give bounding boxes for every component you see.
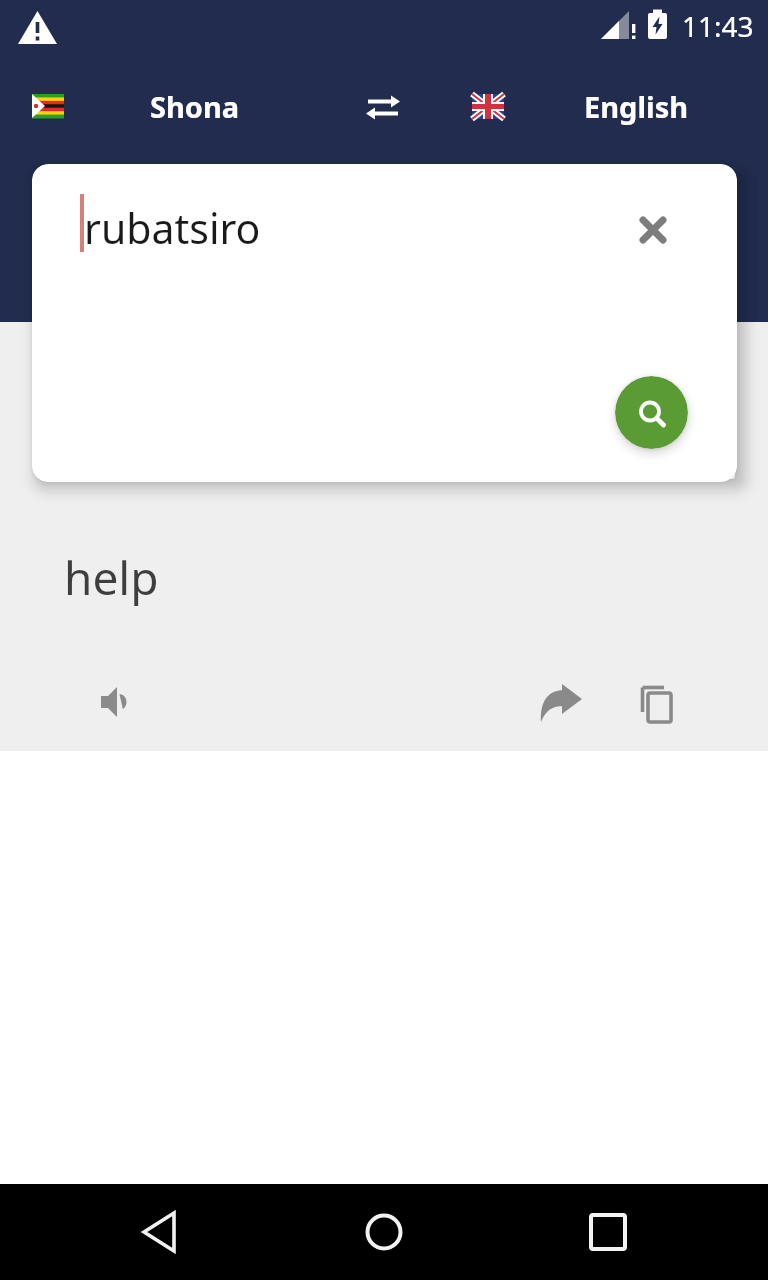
button[interactable] xyxy=(112,1184,208,1280)
button[interactable]: English xyxy=(571,84,701,129)
button[interactable] xyxy=(536,680,584,726)
button[interactable] xyxy=(32,94,64,118)
button[interactable] xyxy=(336,1184,432,1280)
button[interactable] xyxy=(560,1184,656,1280)
button[interactable] xyxy=(472,94,504,119)
staticText: help xyxy=(64,546,159,609)
staticText: rubatsiro xyxy=(84,200,261,256)
button[interactable] xyxy=(636,681,676,727)
button[interactable] xyxy=(633,210,673,250)
button[interactable] xyxy=(615,376,688,449)
staticText: English xyxy=(584,87,689,126)
staticText: Shona xyxy=(150,87,240,126)
staticText: 11:43 xyxy=(682,7,754,45)
button[interactable] xyxy=(366,94,402,120)
button[interactable]: Shona xyxy=(130,84,260,129)
button[interactable] xyxy=(93,682,133,722)
